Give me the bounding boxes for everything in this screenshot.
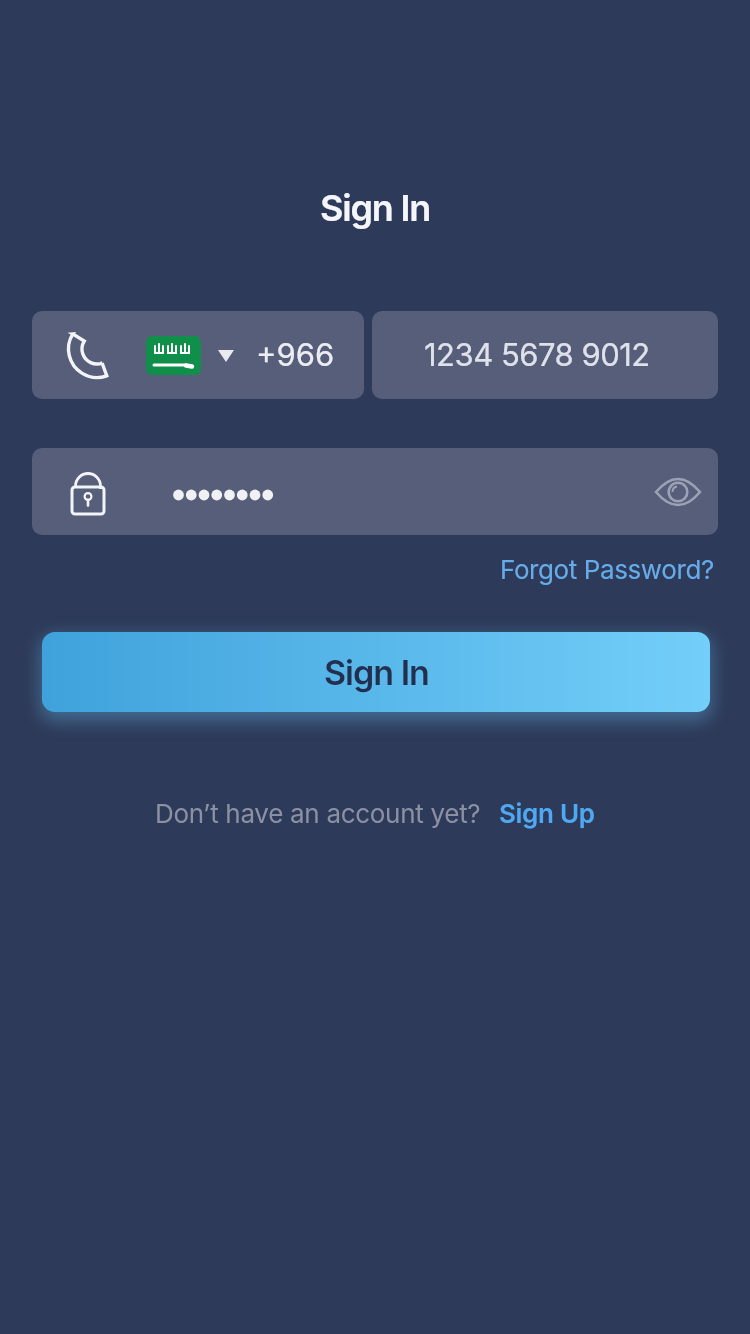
button[interactable] [652, 475, 704, 509]
staticText: 1234 5678 9012 [424, 336, 650, 374]
staticText: Don’t have an account yet? [155, 798, 481, 829]
button[interactable] [32, 448, 718, 535]
button[interactable]: 1234 5678 9012 [372, 311, 718, 399]
button[interactable]: Sign Up [499, 798, 595, 829]
staticText: Sign Up [499, 798, 595, 829]
button[interactable]: Forgot Password? [500, 554, 714, 585]
staticText: Sign In [320, 186, 431, 230]
button[interactable]: Sign In [42, 632, 710, 712]
staticText: +966 [256, 336, 335, 374]
staticText: Sign In [324, 652, 429, 693]
button[interactable]: +966 [32, 311, 364, 399]
